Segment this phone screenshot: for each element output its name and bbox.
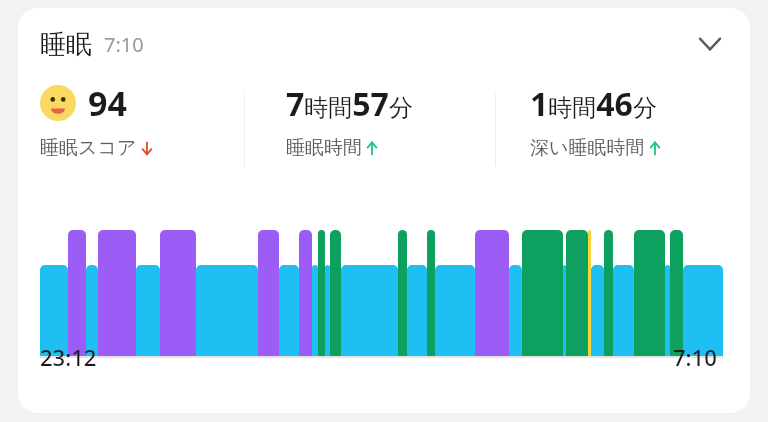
staticText: 1時間46分: [530, 82, 657, 126]
button[interactable]: Expand: [682, 16, 738, 72]
button[interactable]: 睡眠: [18, 8, 750, 80]
staticText: 7:10: [673, 342, 717, 372]
staticText: 94: [88, 80, 127, 126]
staticText: 睡眠時間: [286, 136, 362, 160]
staticText: 7:10: [104, 31, 144, 58]
button[interactable]: Sleep stages chart: [18, 180, 750, 340]
staticText: 睡眠: [40, 28, 92, 61]
staticText: 睡眠スコア: [40, 136, 137, 160]
staticText: 7時間57分: [286, 82, 413, 126]
staticText: 深い睡眠時間: [530, 136, 645, 160]
staticText: 23:12: [40, 342, 97, 372]
